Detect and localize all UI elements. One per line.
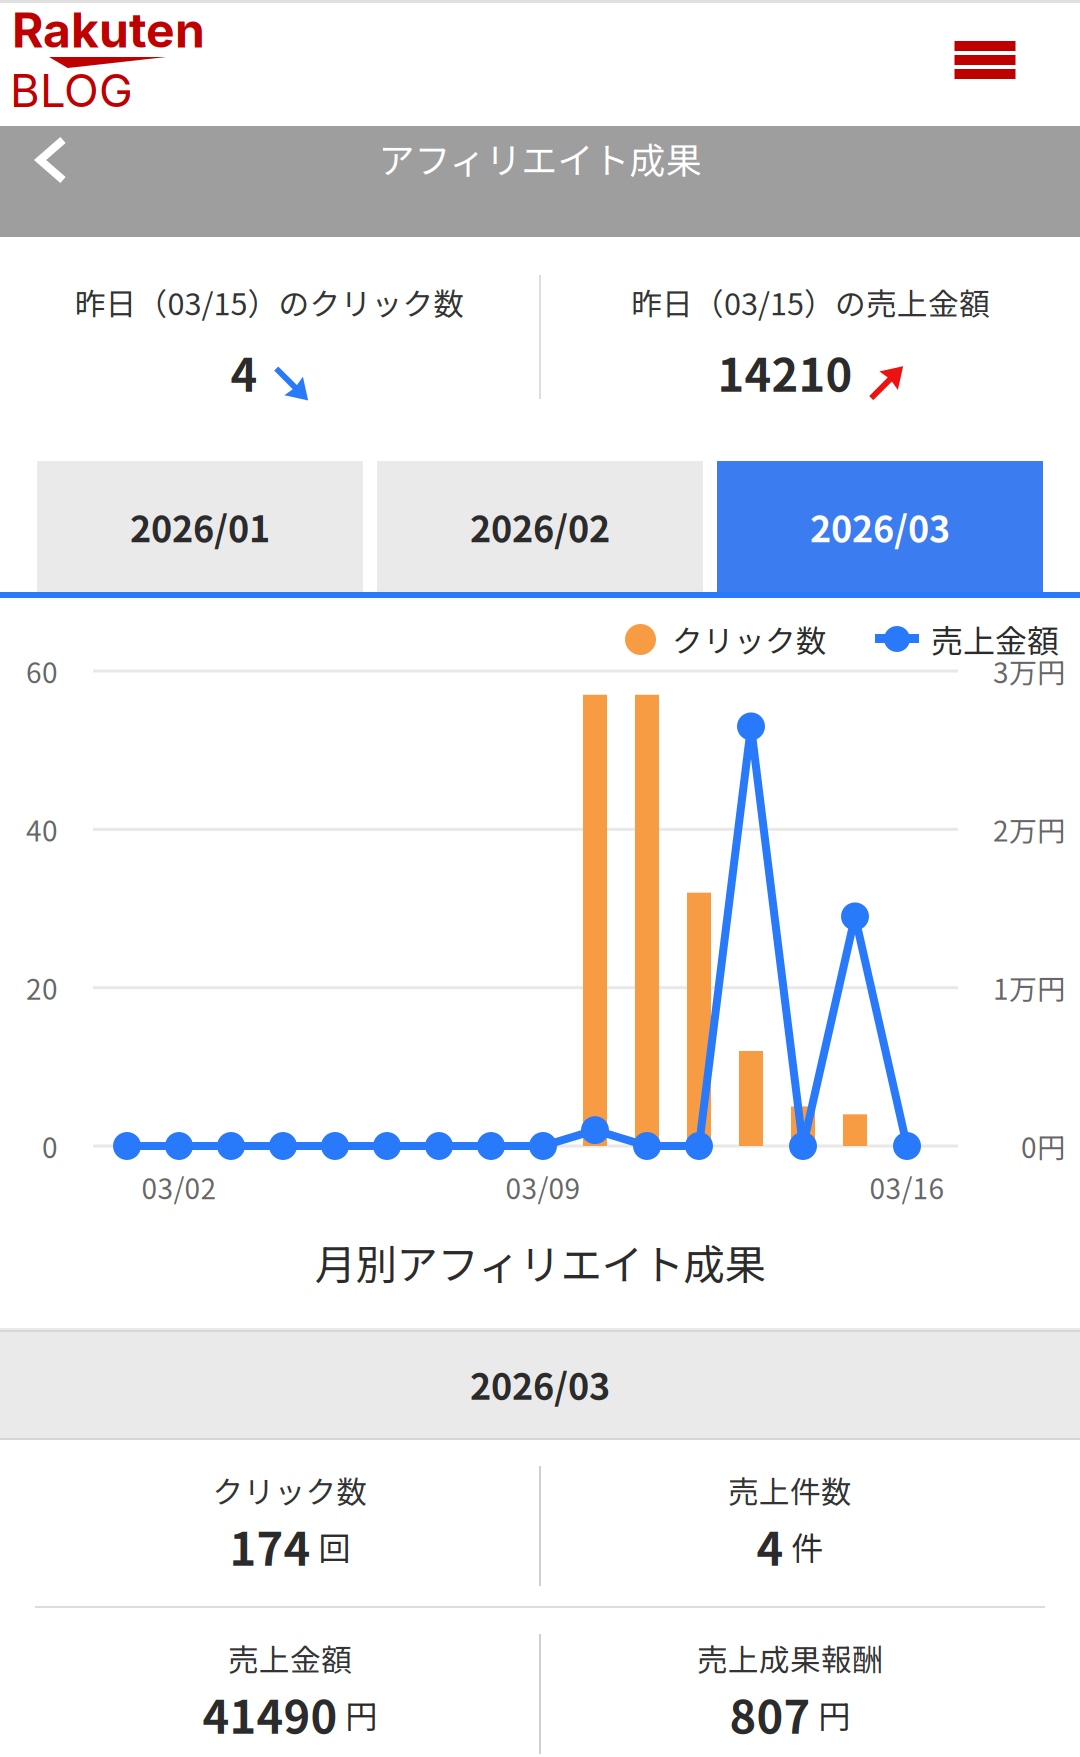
staticText: 2万円 xyxy=(993,809,1065,850)
button[interactable]: 2026/03 xyxy=(717,461,1043,592)
staticText: クリック数 xyxy=(212,1468,367,1512)
staticText: 3万円 xyxy=(993,651,1065,691)
staticText: 03/09 xyxy=(505,1167,580,1207)
staticText: 0円 xyxy=(1021,1126,1065,1166)
staticText: 円 xyxy=(818,1691,850,1737)
staticText: 売上成果報酬 xyxy=(697,1636,883,1680)
button[interactable]: 2026/02 xyxy=(377,461,703,592)
staticText: 売上金額 xyxy=(228,1636,352,1680)
staticText: 円 xyxy=(345,1691,377,1737)
staticText: 40 xyxy=(26,809,58,850)
staticText: 807 xyxy=(729,1681,810,1747)
staticText: 20 xyxy=(26,967,58,1008)
staticText: 03/02 xyxy=(141,1167,216,1207)
staticText: 4 xyxy=(230,339,257,405)
staticText: 売上金額 xyxy=(931,616,1059,662)
staticText: 60 xyxy=(26,651,58,691)
staticText: 14210 xyxy=(717,339,852,405)
staticText: クリック数 xyxy=(672,617,827,661)
staticText: 03/16 xyxy=(869,1167,944,1207)
staticText: 回 xyxy=(318,1523,350,1569)
staticText: 41490 xyxy=(202,1681,337,1747)
staticText: 昨日（03/15）のクリック数 xyxy=(74,280,464,324)
staticText: 2026/03 xyxy=(470,1358,610,1410)
button[interactable]: Menu xyxy=(925,0,1045,120)
staticText: 174 xyxy=(229,1513,310,1579)
button[interactable]: Back xyxy=(0,126,120,237)
staticText: 2026/01 xyxy=(130,500,270,552)
staticText: 0 xyxy=(42,1126,58,1166)
staticText: アフィリエイト成果 xyxy=(378,132,701,184)
staticText: BLOG xyxy=(10,63,133,118)
staticText: 件 xyxy=(791,1523,823,1569)
staticText: 昨日（03/15）の売上金額 xyxy=(631,280,990,324)
staticText: 月別アフィリエイト成果 xyxy=(314,1232,765,1292)
staticText: 1万円 xyxy=(993,967,1065,1008)
button[interactable]: 2026/01 xyxy=(37,461,363,592)
staticText: 2026/03 xyxy=(810,500,950,552)
staticText: 2026/02 xyxy=(470,500,610,552)
staticText: 4 xyxy=(756,1513,783,1579)
staticText: Rakuten xyxy=(12,1,205,59)
staticText: 売上件数 xyxy=(728,1468,852,1512)
